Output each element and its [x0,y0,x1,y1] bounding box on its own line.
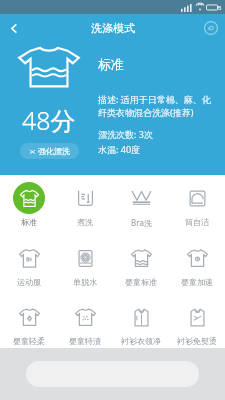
button[interactable]: 婴童标准 [113,240,169,289]
staticText: 婴童轻柔 [13,336,45,346]
staticText: 洗涤模式 [91,21,135,35]
staticText: 筒自洁 [185,217,209,227]
staticText: 婴童特渍 [69,336,101,346]
staticText: 单脱水 [73,277,97,287]
button[interactable]: Help [197,14,225,42]
staticText: 描述: 适用于日常棉、麻、化纤类衣物混合洗涤(推荐) [98,93,217,119]
staticText: Bra洗 [131,217,152,228]
button[interactable]: 婴童特渍 [57,299,113,348]
button[interactable]: 煮洗 [57,180,113,229]
button[interactable]: Bra洗 [113,180,169,230]
button[interactable]: 筒自洁 [169,180,225,229]
staticText: 漂洗次数: 3次 [98,128,153,140]
button[interactable]: 标准 [0,180,57,229]
button[interactable]: 衬衫免熨烫 [169,299,225,348]
staticText: 标准 [98,56,124,72]
staticText: 煮洗 [77,217,93,227]
button[interactable]: 衬衫衣领净 [113,299,169,348]
button[interactable]: 强化漂洗 [20,143,79,159]
staticText: 衬衫免熨烫 [177,336,217,346]
staticText: 婴童加速 [181,277,213,287]
button[interactable]: 婴童加速 [169,240,225,289]
staticText: 衬衫衣领净 [121,336,161,346]
staticText: 强化漂洗 [38,146,70,156]
button[interactable]: 婴童轻柔 [0,299,57,348]
staticText: 标准 [21,217,37,227]
staticText: 运动服 [17,277,41,287]
button[interactable]: Back [0,14,28,42]
button[interactable]: 运动服 [0,240,57,289]
staticText: 48分 [22,103,76,137]
staticText: 3 [218,4,222,12]
staticText: 水温: 40度 [98,143,141,155]
staticText: 婴童标准 [125,277,157,287]
button[interactable]: 单脱水 [57,240,113,289]
